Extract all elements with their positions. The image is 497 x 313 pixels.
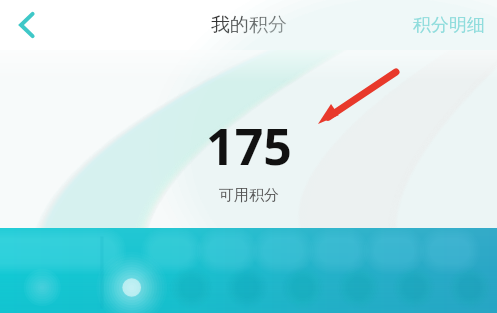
button[interactable]: 积分明细 <box>401 0 497 50</box>
button[interactable]: Back <box>0 0 54 50</box>
button[interactable]: 兑换项目 6 <box>431 228 497 313</box>
staticText: 175 <box>206 112 292 180</box>
staticText: 我的积分 <box>211 13 287 37</box>
button[interactable]: 兑换项目 3 <box>233 228 299 313</box>
staticText: 积分明细 <box>413 14 485 37</box>
button[interactable]: 兑换项目 1 <box>101 228 167 313</box>
button[interactable]: 兑换项目 2 <box>167 228 233 313</box>
staticText: 可用积分 <box>219 186 279 205</box>
button[interactable]: 兑换项目 4 <box>299 228 365 313</box>
button[interactable]: 兑换项目 5 <box>365 228 431 313</box>
button[interactable]: 积分任务 <box>0 228 101 313</box>
